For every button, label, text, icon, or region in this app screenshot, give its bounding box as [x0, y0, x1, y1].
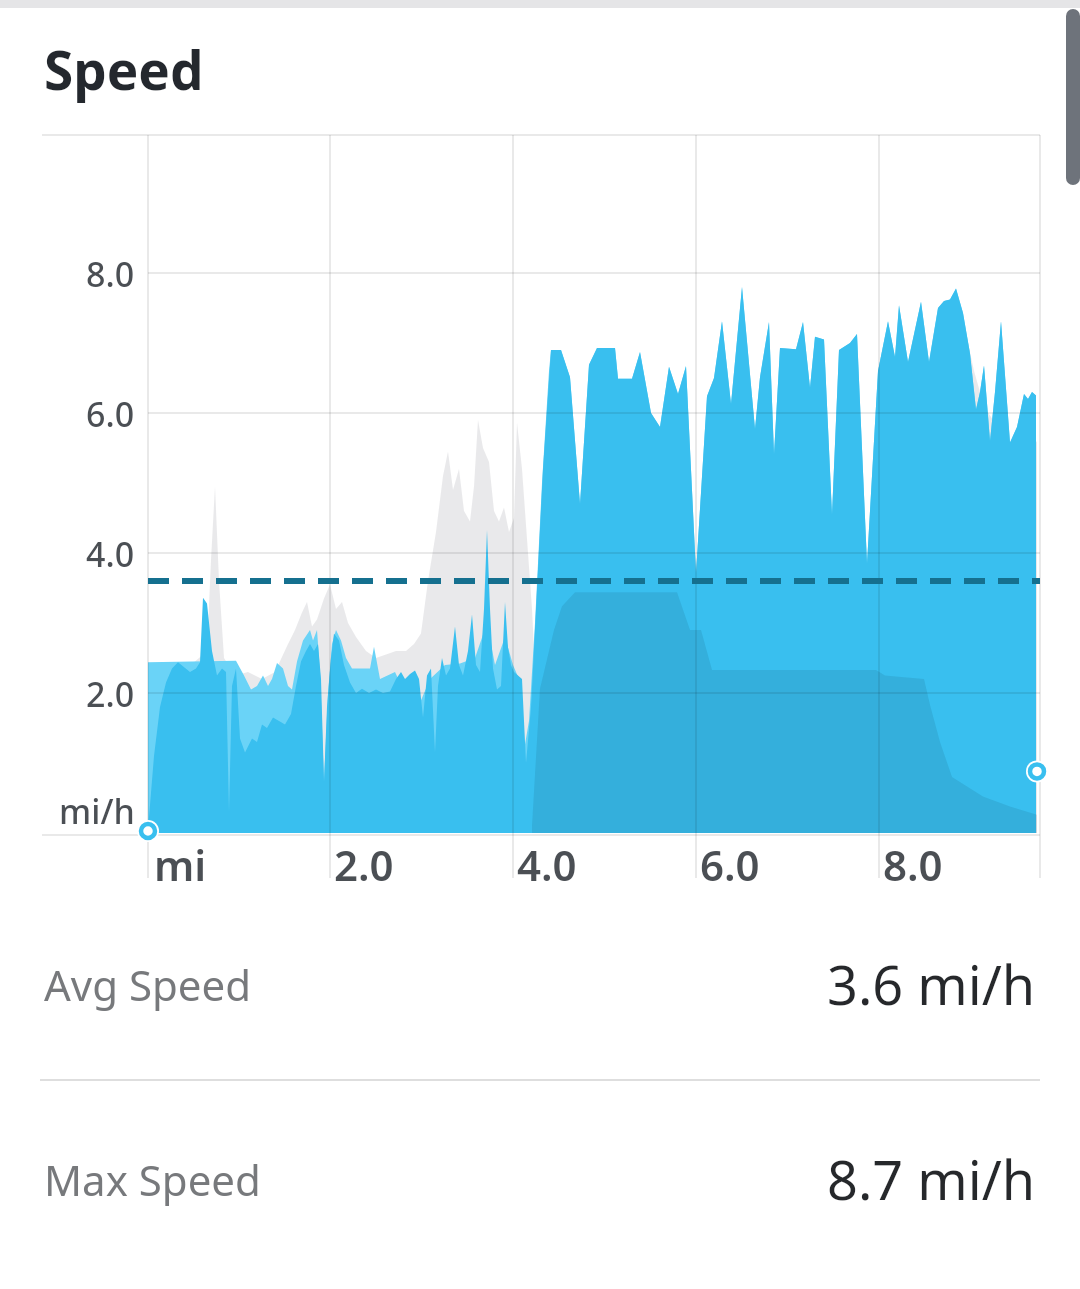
staticText: 8.0: [883, 836, 943, 893]
staticText: 6.0: [700, 836, 760, 893]
staticText: Max Speed: [44, 1151, 261, 1208]
staticText: 3.6 mi/h: [827, 947, 1036, 1021]
staticText: 2.0: [334, 836, 394, 893]
staticText: 6.0: [86, 391, 135, 437]
staticText: 4.0: [517, 836, 577, 893]
staticText: mi: [154, 836, 207, 893]
staticText: Speed: [44, 33, 204, 105]
button[interactable]: Max Speed: [0, 1114, 1080, 1244]
staticText: 8.7 mi/h: [827, 1142, 1036, 1216]
staticText: 4.0: [86, 531, 135, 577]
staticText: 2.0: [86, 671, 135, 717]
button[interactable]: Avg Speed: [0, 919, 1080, 1049]
staticText: Avg Speed: [44, 956, 252, 1013]
staticText: 8.0: [86, 251, 135, 297]
staticText: mi/h: [59, 788, 135, 834]
